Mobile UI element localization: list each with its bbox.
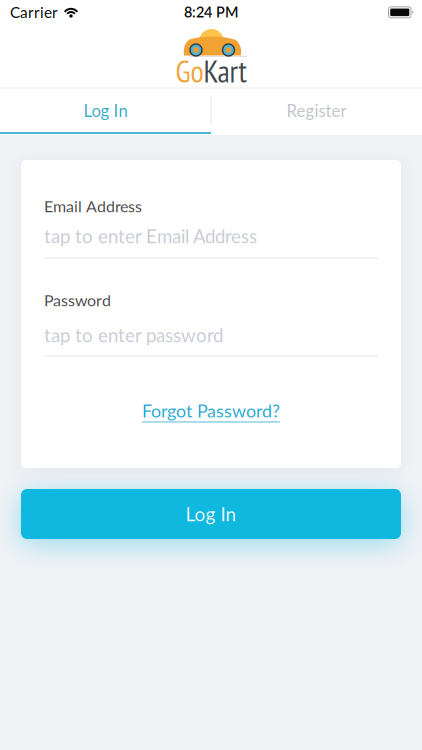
staticText: Kart	[203, 51, 246, 91]
staticText: Password	[44, 290, 111, 310]
staticText: tap to enter Email Address	[44, 225, 257, 247]
staticText: tap to enter password	[44, 324, 223, 346]
button[interactable]: Register	[211, 88, 422, 133]
staticText: Log In	[185, 503, 236, 525]
staticText: Carrier	[10, 3, 58, 21]
staticText: Email Address	[44, 196, 142, 216]
staticText: Forgot Password?	[142, 400, 280, 421]
button[interactable]: Forgot Password?	[142, 400, 280, 421]
button[interactable]: tap to enter password	[44, 316, 378, 360]
staticText: Log In	[83, 100, 127, 120]
staticText: Go	[175, 51, 203, 91]
button[interactable]: Log In	[0, 88, 211, 133]
button[interactable]: tap to enter Email Address	[44, 218, 378, 262]
button[interactable]: Log In	[21, 489, 401, 539]
staticText: 8:24 PM	[184, 3, 238, 21]
staticText: Register	[286, 100, 346, 120]
